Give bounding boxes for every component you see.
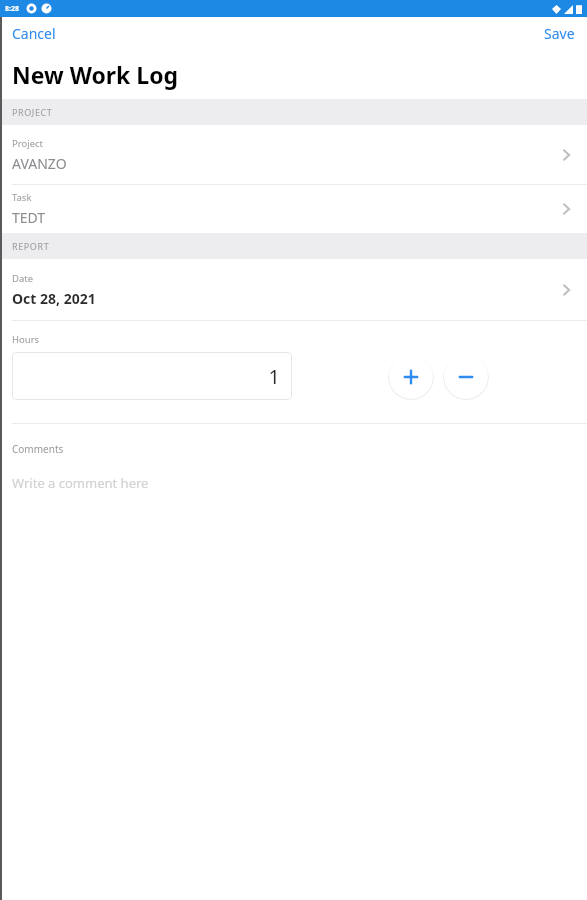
staticText: AVANZO	[12, 154, 67, 173]
staticText: Comments	[12, 442, 64, 456]
button[interactable]: Cancel	[0, 20, 66, 47]
staticText: Save	[544, 24, 575, 43]
staticText: Hours	[12, 333, 40, 346]
staticText: Task	[12, 191, 32, 204]
staticText: 1	[268, 363, 280, 390]
staticText: Date	[12, 272, 34, 285]
button[interactable]: Project	[0, 125, 587, 185]
staticText: Cancel	[12, 24, 56, 43]
button[interactable]: Task	[0, 185, 587, 233]
staticText: Project	[12, 137, 44, 150]
staticText: REPORT	[12, 240, 50, 252]
staticText: 8:28	[5, 4, 19, 14]
button[interactable]: Increase hours	[388, 354, 434, 400]
staticText: Write a comment here	[12, 474, 149, 492]
staticText: New Work Log	[12, 59, 179, 90]
button[interactable]: Date	[0, 259, 587, 321]
button[interactable]: Decrease hours	[443, 354, 489, 400]
button[interactable]: Save	[534, 20, 587, 47]
button[interactable]: 1	[12, 352, 292, 400]
staticText: Oct 28, 2021	[12, 289, 96, 308]
button[interactable]: Comments	[0, 424, 587, 504]
staticText: PROJECT	[12, 106, 53, 118]
staticText: TEDT	[12, 208, 46, 227]
